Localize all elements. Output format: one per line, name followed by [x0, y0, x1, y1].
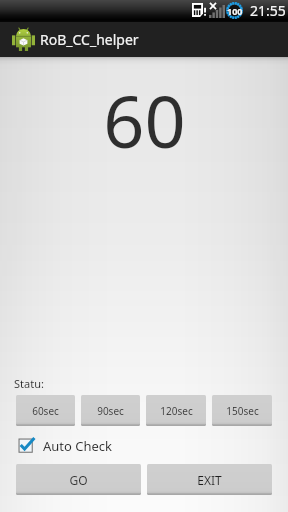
button[interactable]: Auto Check [14, 434, 113, 458]
staticText: Auto Check [43, 437, 113, 455]
button[interactable]: GO [16, 464, 141, 495]
staticText: 60 [103, 71, 186, 169]
staticText: 90sec [97, 404, 124, 418]
button[interactable]: 90sec [81, 395, 140, 426]
button[interactable]: 120sec [146, 395, 206, 426]
staticText: 150sec [226, 404, 259, 418]
staticText: 100 [227, 5, 243, 17]
staticText: 120sec [160, 404, 193, 418]
staticText: GO [69, 472, 88, 488]
staticText: Statu: [14, 376, 44, 391]
button[interactable]: 60sec [16, 395, 75, 426]
staticText: 60sec [32, 404, 59, 418]
staticText: 21:55 [250, 1, 286, 20]
button[interactable]: 150sec [212, 395, 272, 426]
staticText: EXIT [197, 472, 222, 488]
button[interactable]: EXIT [147, 464, 272, 495]
staticText: RoB_CC_helper [40, 30, 139, 49]
